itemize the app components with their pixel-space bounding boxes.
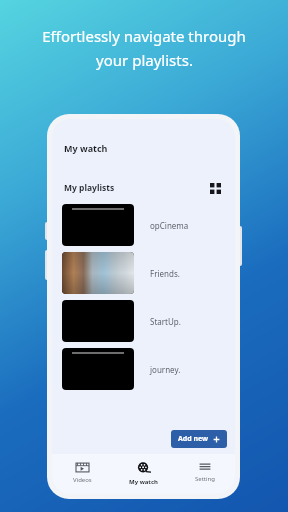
button[interactable]: Friends.: [52, 249, 235, 297]
button[interactable]: Grid view: [207, 180, 223, 196]
staticText: Videos: [73, 476, 92, 484]
staticText: My watch: [129, 478, 158, 486]
staticText: Setting: [195, 475, 215, 483]
staticText: StartUp.: [150, 316, 181, 327]
staticText: your playlists.: [96, 50, 193, 70]
staticText: Friends.: [150, 268, 180, 279]
staticText: journey.: [150, 364, 181, 375]
button[interactable]: StartUp.: [52, 297, 235, 345]
button[interactable]: Setting: [174, 459, 235, 485]
button[interactable]: Videos: [52, 459, 113, 486]
button[interactable]: opCinema: [52, 201, 235, 249]
staticText: opCinema: [150, 220, 189, 231]
staticText: My watch: [64, 142, 108, 154]
staticText: Add new: [178, 434, 209, 444]
button[interactable]: My watch: [113, 459, 174, 488]
button[interactable]: Add new: [171, 430, 227, 448]
staticText: Effortlessly navigate through: [42, 26, 246, 46]
staticText: My playlists: [64, 182, 115, 194]
button[interactable]: journey.: [52, 345, 235, 393]
